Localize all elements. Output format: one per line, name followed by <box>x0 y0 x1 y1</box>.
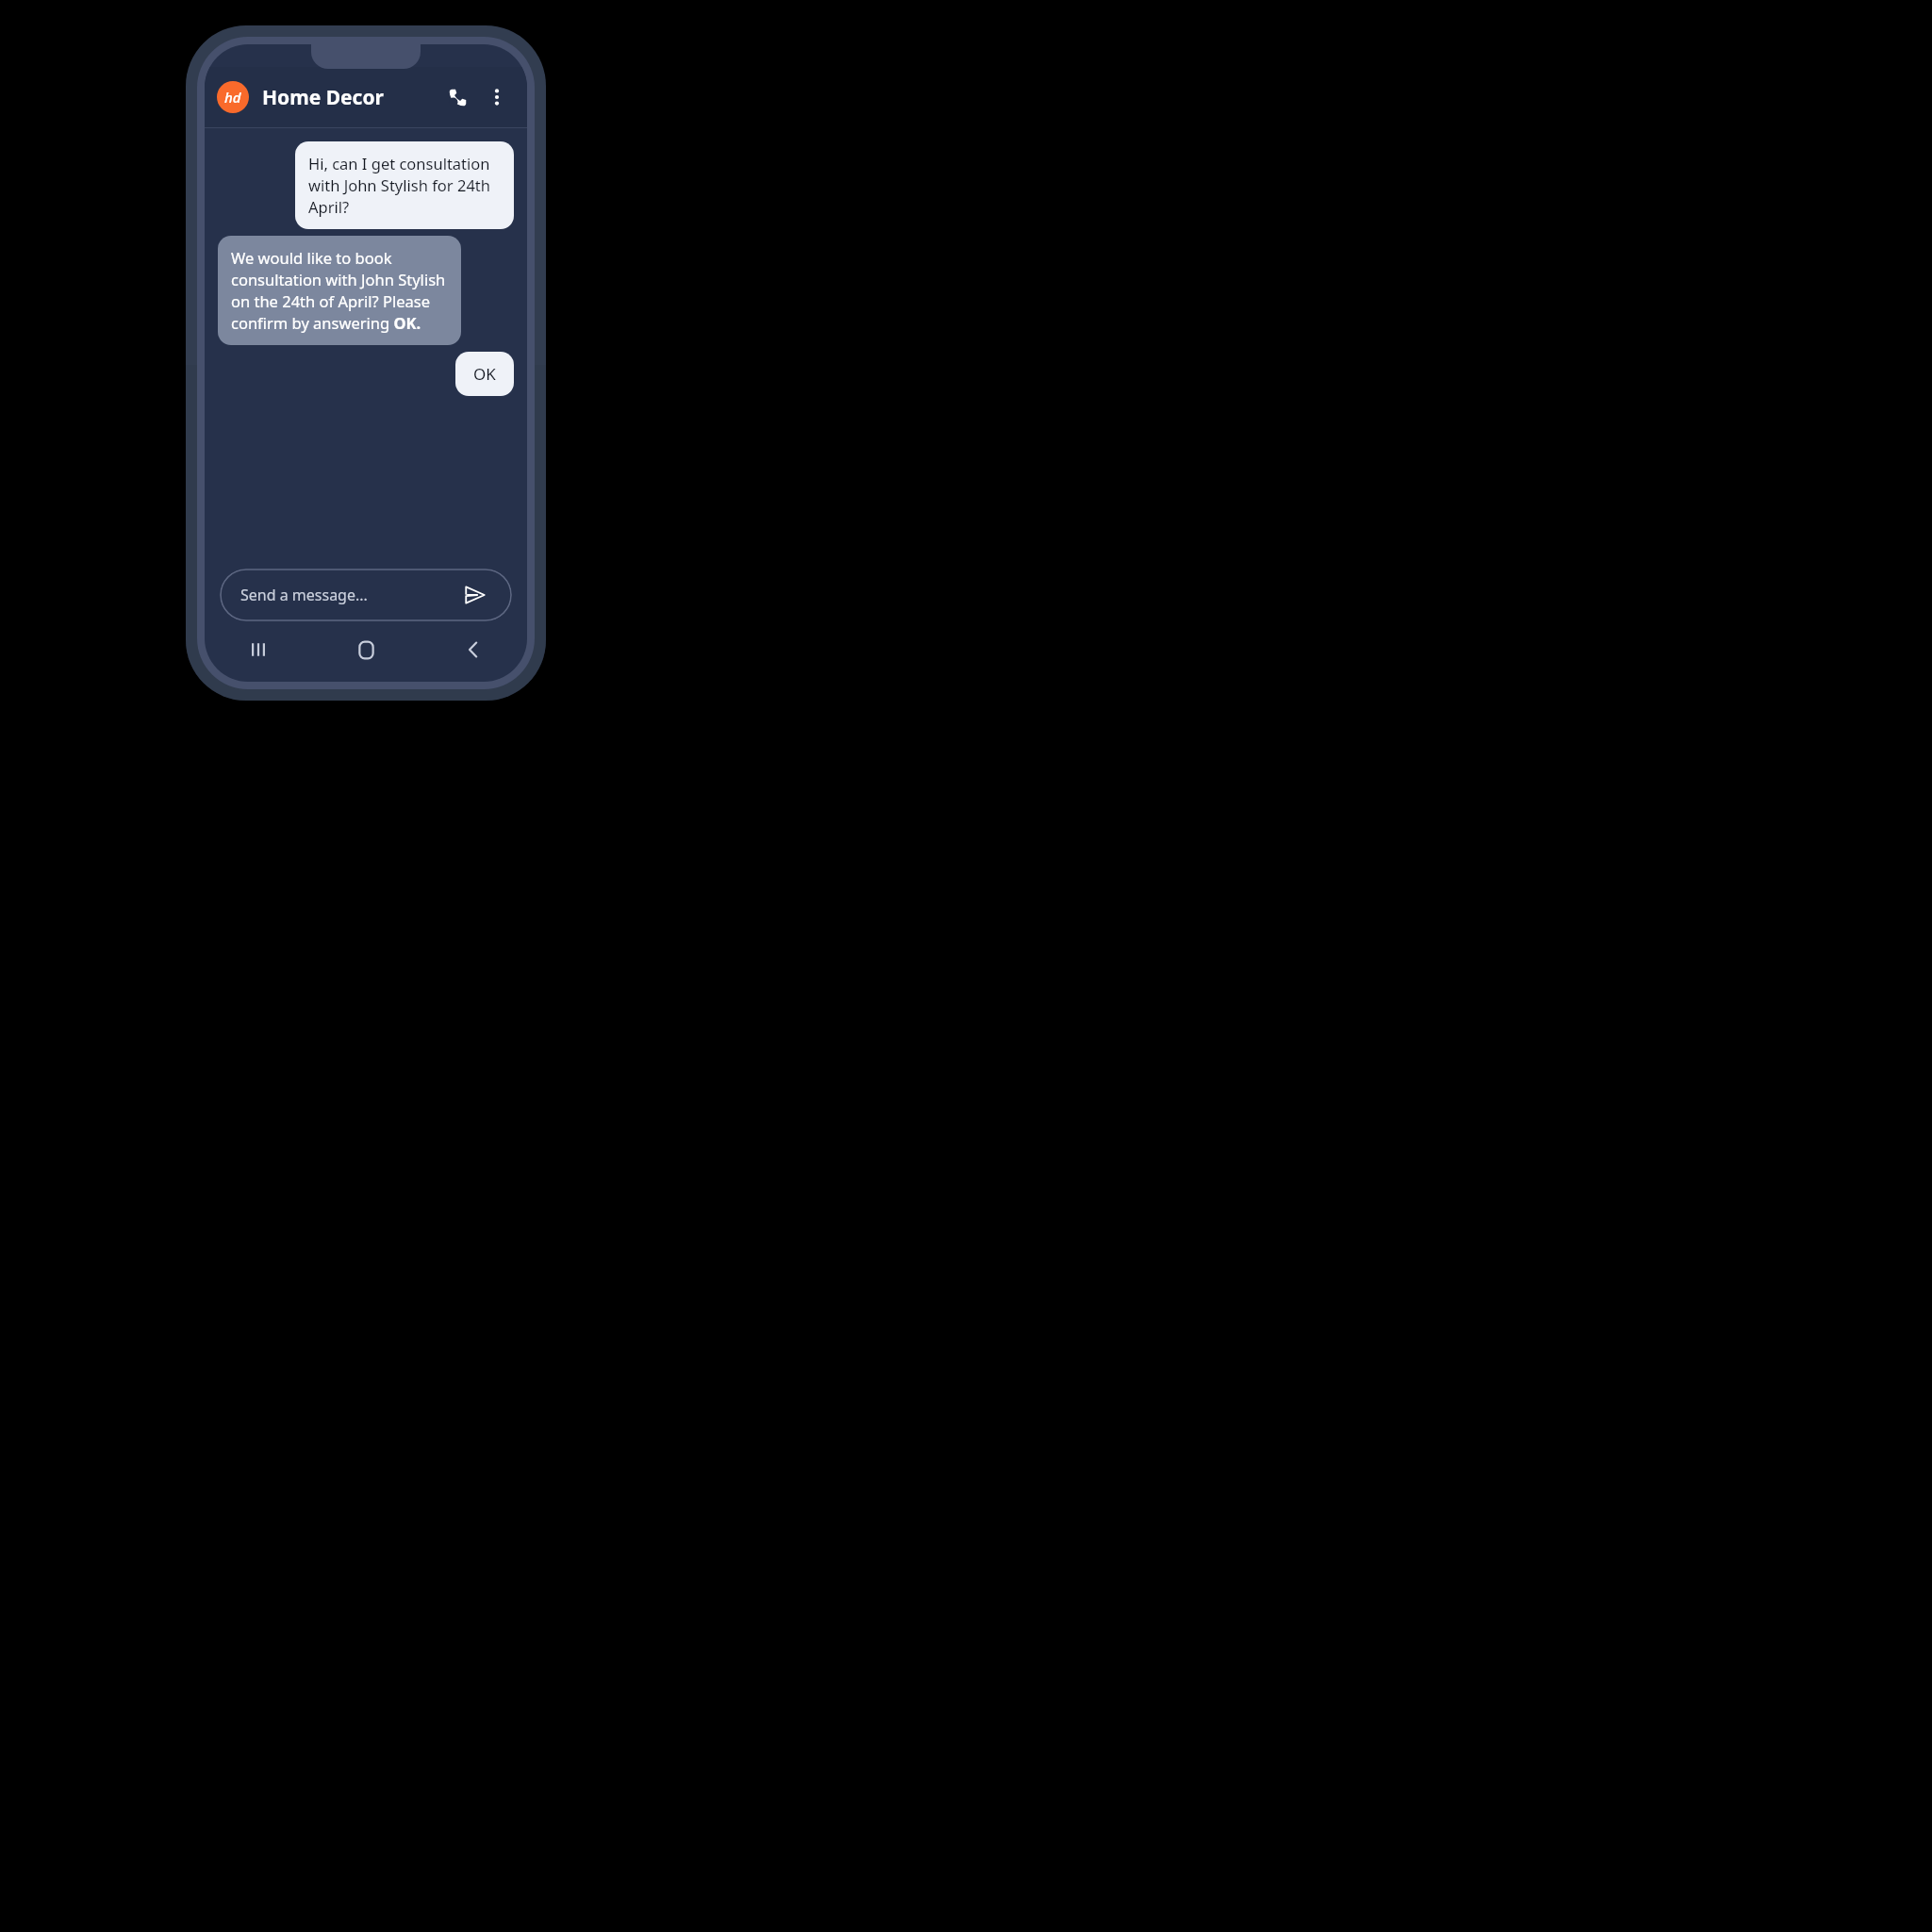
button[interactable]: OK <box>455 352 514 396</box>
staticText: Hi, can I get consultation with John Sty… <box>308 153 501 218</box>
staticText: OK <box>473 363 496 385</box>
button[interactable]: We would like to book consultation with … <box>218 236 461 345</box>
button[interactable]: Back <box>420 627 527 672</box>
button[interactable]: Send <box>459 579 491 611</box>
staticText: Send a message... <box>240 585 368 605</box>
staticText: Home Decor <box>262 84 384 111</box>
staticText: hd <box>224 88 241 107</box>
button[interactable]: Hi, can I get consultation with John Sty… <box>295 141 514 229</box>
button[interactable]: Recent apps <box>205 627 312 672</box>
button[interactable]: Call <box>439 79 475 115</box>
button[interactable]: Home <box>312 627 420 672</box>
button[interactable]: hd <box>217 81 249 113</box>
button[interactable]: Send a message... <box>220 569 512 621</box>
staticText: We would like to book consultation with … <box>231 247 448 334</box>
button[interactable]: More options <box>479 79 515 115</box>
